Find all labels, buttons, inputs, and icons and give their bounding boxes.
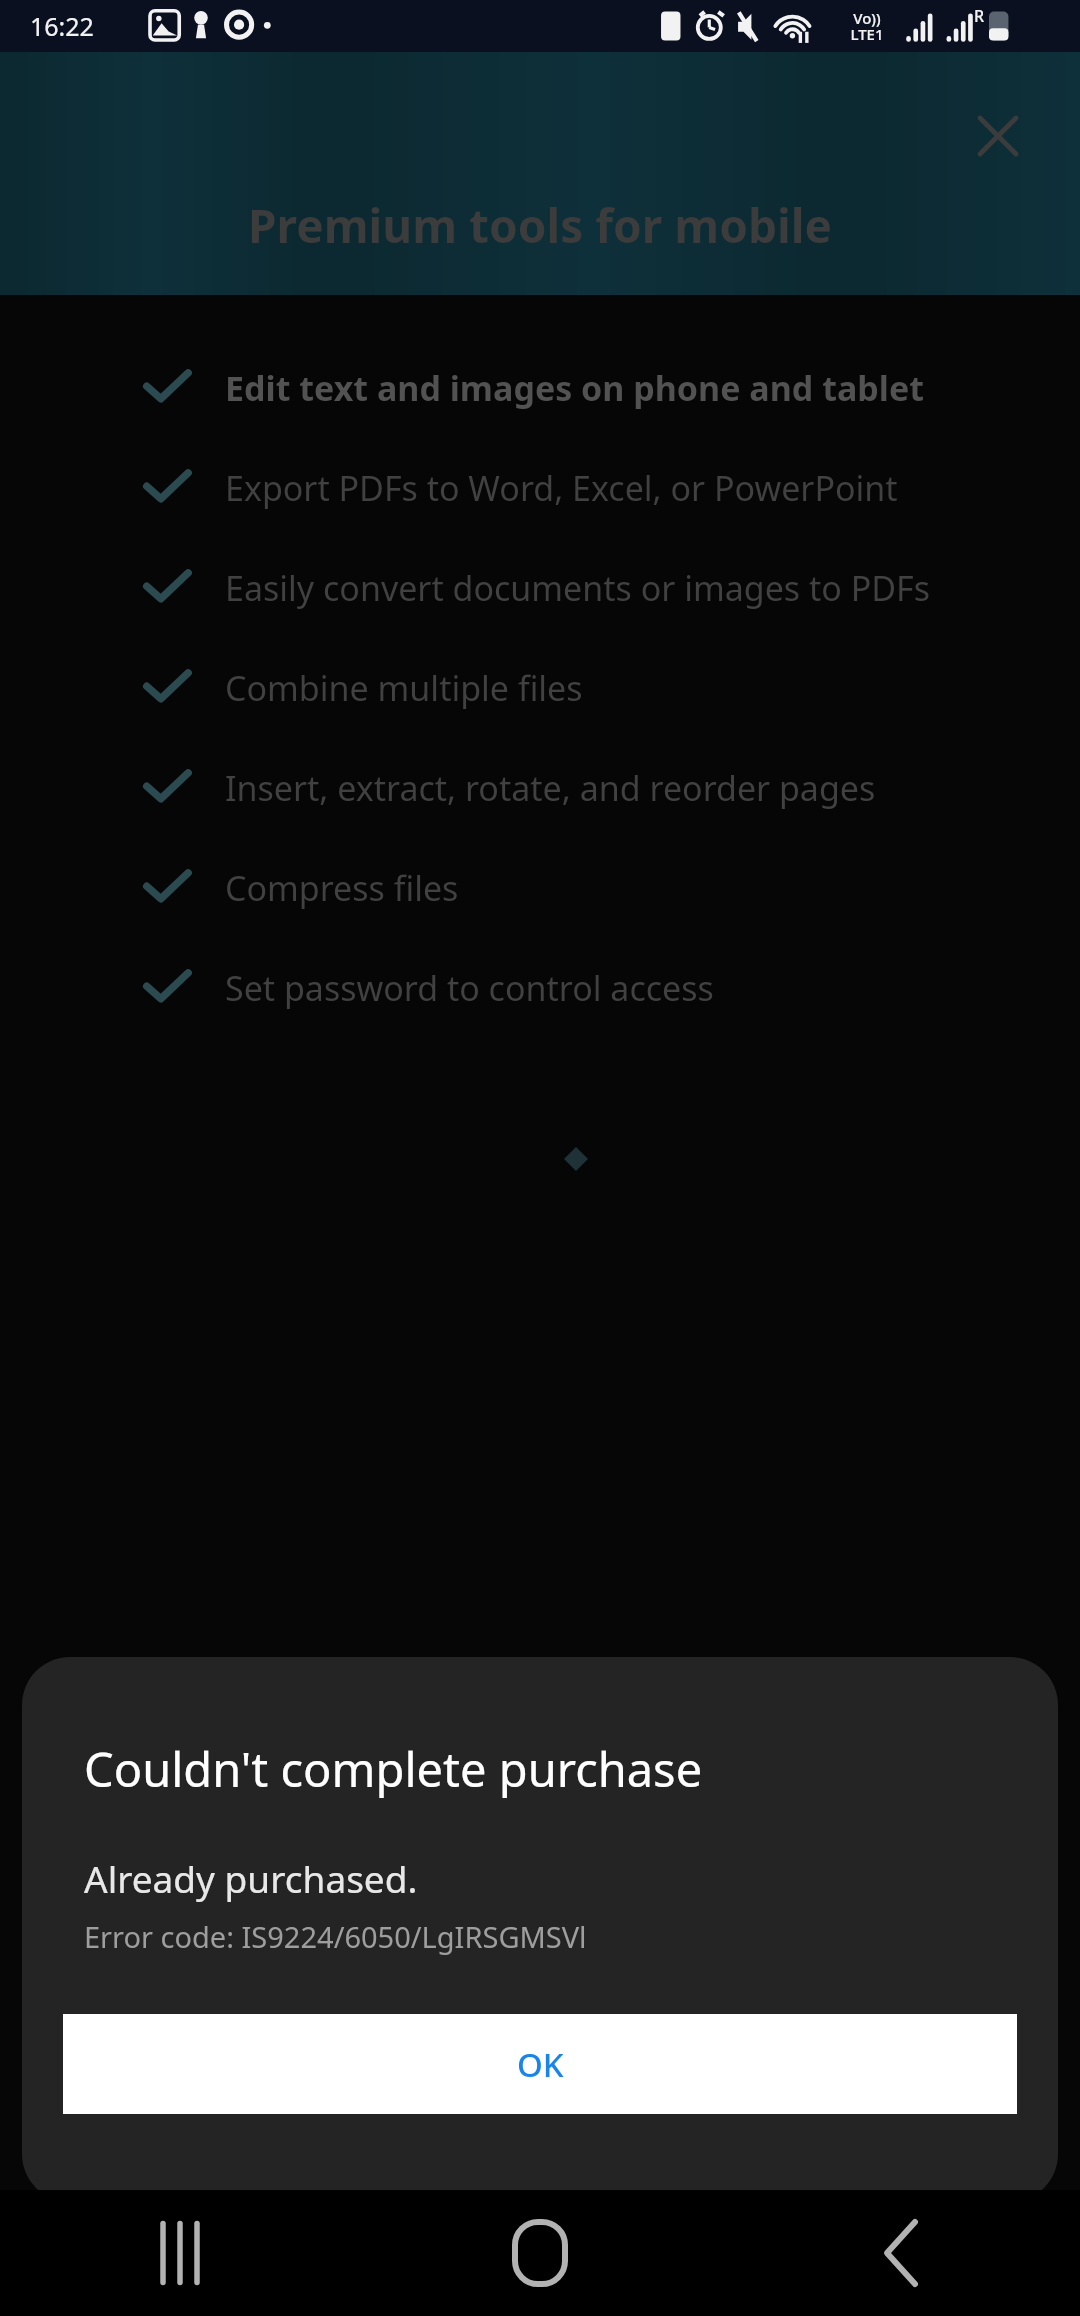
button[interactable]: Compress files xyxy=(0,838,1080,938)
button[interactable]: Combine multiple files xyxy=(0,638,1080,738)
staticText: Premium tools for mobile xyxy=(248,194,832,257)
staticText: Vo)) LTE1 xyxy=(850,8,884,44)
button[interactable]: Close xyxy=(960,98,1036,174)
staticText: R xyxy=(974,5,985,27)
staticText: Easily convert documents or images to PD… xyxy=(225,565,930,611)
staticText: 16:22 xyxy=(30,9,94,43)
button[interactable]: Insert, extract, rotate, and reorder pag… xyxy=(0,738,1080,838)
button[interactable]: Export PDFs to Word, Excel, or PowerPoin… xyxy=(0,438,1080,538)
staticText: Edit text and images on phone and tablet xyxy=(225,365,924,411)
button[interactable]: Recents xyxy=(0,2190,360,2316)
staticText: Already purchased. xyxy=(84,1853,418,1903)
staticText: Export PDFs to Word, Excel, or PowerPoin… xyxy=(225,465,898,511)
staticText: OK xyxy=(517,2042,564,2087)
staticText: Error code: IS9224/6050/LgIRSGMSVl xyxy=(84,1917,587,1956)
staticText: Compress files xyxy=(225,865,459,911)
staticText: Couldn't complete purchase xyxy=(84,1737,703,1801)
staticText: Combine multiple files xyxy=(225,665,583,711)
button[interactable]: Home xyxy=(360,2190,720,2316)
button[interactable]: OK xyxy=(63,2014,1017,2114)
button[interactable]: Set password to control access xyxy=(0,938,1080,1038)
button[interactable]: Easily convert documents or images to PD… xyxy=(0,538,1080,638)
button[interactable]: Edit text and images on phone and tablet xyxy=(0,338,1080,438)
staticText: Set password to control access xyxy=(225,965,714,1011)
button[interactable]: Back xyxy=(720,2190,1080,2316)
staticText: Insert, extract, rotate, and reorder pag… xyxy=(225,765,876,811)
